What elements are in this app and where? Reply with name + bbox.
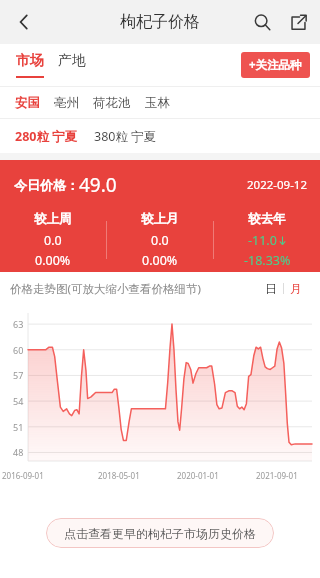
staticText: 0.0	[151, 232, 169, 249]
staticText: 较上月	[141, 211, 179, 227]
button[interactable]: 亳州	[54, 95, 93, 111]
staticText: 枸杞子价格	[120, 12, 200, 32]
staticText: 点击查看更早的枸杞子市场历史价格	[64, 526, 256, 541]
staticText: 48	[13, 446, 24, 458]
staticText: +关注品种	[249, 57, 302, 73]
button[interactable]: 安国	[15, 95, 54, 111]
staticText: 0.0	[44, 232, 62, 249]
staticText: 2016-09-01	[2, 470, 44, 481]
staticText: 日	[265, 281, 277, 296]
button[interactable]: 玉林	[145, 95, 184, 111]
button[interactable]: Back	[4, 2, 44, 42]
staticText: 2018-05-01	[98, 470, 140, 481]
staticText: 荷花池	[93, 95, 131, 111]
staticText: 49.0	[79, 172, 117, 198]
staticText: 380粒 宁夏	[94, 128, 157, 145]
staticText: 市场	[16, 52, 44, 70]
button[interactable]: 产地	[58, 52, 86, 78]
staticText: 60	[13, 344, 24, 356]
staticText: -11.0	[248, 232, 277, 249]
staticText: 较上周	[34, 211, 72, 227]
staticText: 月	[290, 281, 302, 296]
button[interactable]: 荷花池	[93, 95, 145, 111]
staticText: 今日价格：	[14, 177, 79, 193]
staticText: 280粒 宁夏	[15, 128, 78, 145]
staticText: 63	[13, 318, 24, 330]
button[interactable]: 市场	[16, 52, 44, 78]
button[interactable]: 日	[259, 281, 283, 296]
staticText: 较去年	[248, 211, 286, 227]
staticText: 2022-09-12	[247, 177, 308, 193]
staticText: 54	[13, 395, 24, 407]
staticText: 2020-01-01	[177, 470, 219, 481]
staticText: 51	[13, 421, 24, 433]
button[interactable]: 380粒 宁夏	[94, 128, 157, 145]
staticText: -18.33%	[244, 252, 291, 269]
staticText: 0.00%	[142, 252, 178, 269]
staticText: 安国	[15, 95, 40, 111]
staticText: 2021-09-01	[256, 470, 298, 481]
button[interactable]: +关注品种	[241, 52, 310, 78]
staticText: 产地	[58, 52, 86, 70]
button[interactable]: 点击查看更早的枸杞子市场历史价格	[46, 518, 274, 548]
button[interactable]: Share	[280, 4, 316, 40]
staticText: 玉林	[145, 95, 170, 111]
button[interactable]: Search	[244, 4, 280, 40]
staticText: 57	[13, 369, 24, 381]
button[interactable]: 月	[284, 281, 308, 296]
button[interactable]: 280粒 宁夏	[15, 128, 94, 145]
staticText: 亳州	[54, 95, 79, 111]
staticText: 价格走势图(可放大缩小查看价格细节)	[10, 281, 201, 297]
staticText: 0.00%	[35, 252, 71, 269]
